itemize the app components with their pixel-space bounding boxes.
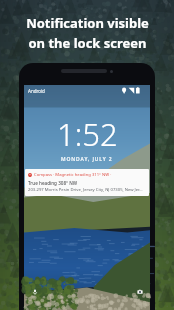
staticText: 203-297 Morris Pesin Drive, Jersey City,…	[28, 187, 143, 193]
button[interactable]: Voice assistant	[30, 287, 39, 296]
staticText: True heading 308° NW	[28, 180, 78, 186]
staticText: Android	[28, 88, 45, 94]
staticText: Compass · Magnetic heading 311° NW ·	[34, 172, 112, 178]
staticText: on the lock screen	[28, 34, 147, 52]
button[interactable]: Compass · Magnetic heading 311° NW ·	[25, 169, 149, 196]
staticText: Notification visible	[26, 14, 149, 32]
staticText: 1:52	[57, 113, 118, 155]
staticText: MONDAY, JULY 2	[61, 156, 113, 163]
button[interactable]: Camera	[135, 287, 144, 296]
